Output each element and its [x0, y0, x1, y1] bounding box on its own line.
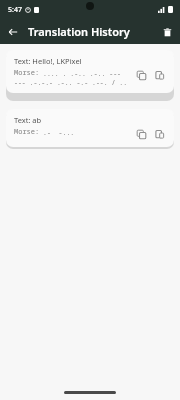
- staticText: .... . .-.. .-.. ---: [43, 69, 122, 78]
- staticText: Translation History: [28, 24, 130, 39]
- staticText: 5:47: [8, 5, 22, 15]
- button[interactable]: Copy morse: [152, 127, 166, 141]
- button[interactable]: Copy morse: [152, 68, 166, 82]
- button[interactable]: Delete all: [158, 23, 176, 41]
- staticText: .- -...: [43, 128, 75, 137]
- button[interactable]: Back: [4, 23, 22, 41]
- staticText: Morse:: [14, 127, 40, 137]
- staticText: Text: ab: [14, 115, 42, 125]
- button[interactable]: Copy text: [134, 68, 148, 82]
- staticText: Text: Hello!, LKPixel: [14, 56, 82, 66]
- staticText: Morse:: [14, 68, 40, 78]
- button[interactable]: Copy text: [134, 127, 148, 141]
- staticText: --- .-.-.- .-.. -.- .--. / .. -..- . .-.…: [14, 78, 130, 87]
- button[interactable]: Text: ab: [6, 109, 174, 147]
- button[interactable]: Text: Hello!, LKPixel: [6, 50, 174, 93]
